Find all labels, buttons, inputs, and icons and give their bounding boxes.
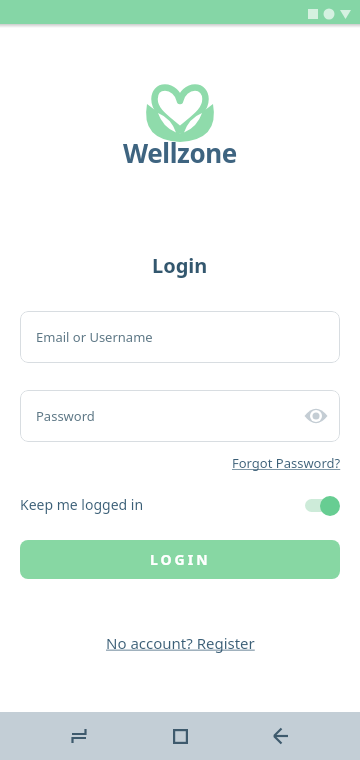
button[interactable]: LOGIN [20, 540, 340, 579]
staticText: Password [36, 407, 95, 425]
staticText: LOGIN [150, 550, 211, 569]
button[interactable] [257, 712, 305, 760]
button[interactable]: Email or Username [20, 311, 340, 363]
button[interactable] [301, 495, 340, 516]
staticText: Keep me logged in [20, 495, 144, 514]
staticText: Wellzone [123, 135, 237, 170]
button[interactable] [55, 712, 103, 760]
button[interactable]: Forgot Password? [232, 454, 341, 472]
button[interactable]: No account? Register [106, 633, 255, 653]
staticText: Login [152, 252, 208, 279]
button[interactable] [156, 712, 204, 760]
button[interactable] [305, 405, 327, 427]
staticText: Email or Username [36, 328, 153, 346]
button[interactable]: Password [20, 390, 340, 442]
